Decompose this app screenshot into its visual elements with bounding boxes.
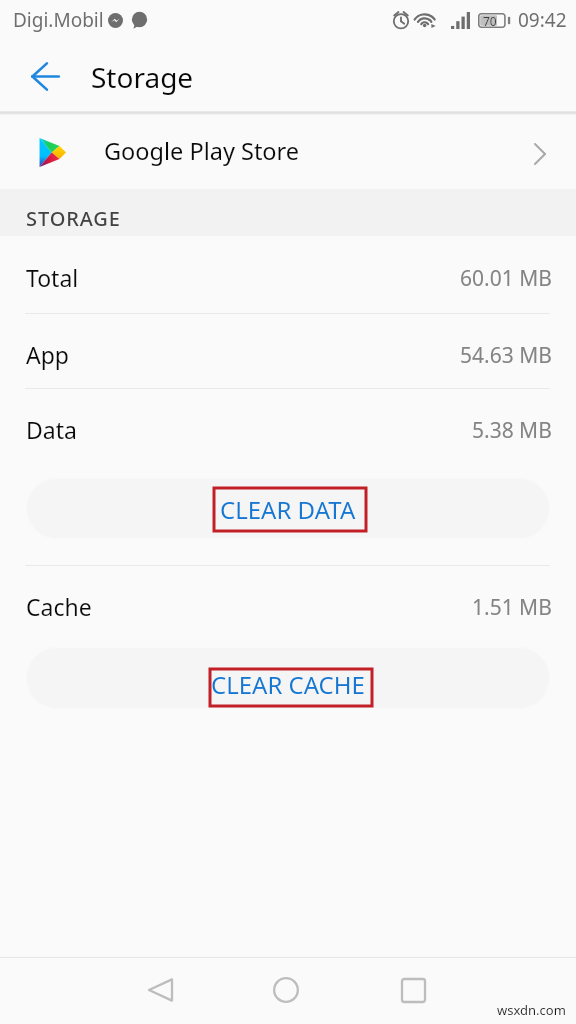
staticText: Storage	[91, 58, 194, 96]
staticText: 09:42	[518, 7, 567, 33]
button[interactable]: Google Play Store	[0, 115, 576, 189]
button[interactable]: Home	[261, 965, 311, 1015]
staticText: CLEAR DATA	[220, 493, 356, 526]
staticText: 60.01 MB	[460, 264, 552, 293]
staticText: App	[26, 339, 69, 370]
staticText: CLEAR CACHE	[211, 668, 365, 701]
button[interactable]: App	[0, 314, 576, 388]
staticText: Total	[26, 262, 79, 293]
button[interactable]: Recents	[388, 965, 438, 1015]
button[interactable]: Back	[135, 965, 185, 1015]
staticText: wsxdn.com	[497, 1001, 566, 1019]
button[interactable]: Cache	[0, 566, 576, 641]
button[interactable]: Back	[20, 51, 70, 101]
staticText: Google Play Store	[104, 135, 300, 167]
staticText: 54.63 MB	[460, 341, 552, 370]
staticText: Data	[26, 414, 77, 445]
button[interactable]: CLEAR DATA	[26, 478, 550, 539]
staticText: 70	[483, 13, 497, 28]
button[interactable]: CLEAR CACHE	[26, 647, 550, 709]
staticText: STORAGE	[26, 205, 121, 232]
button[interactable]: Data	[0, 389, 576, 464]
staticText: 5.38 MB	[472, 416, 552, 445]
staticText: Digi.Mobil	[13, 7, 104, 33]
staticText: 1.51 MB	[472, 593, 552, 622]
staticText: Cache	[26, 591, 92, 622]
button[interactable]: Total	[0, 236, 576, 313]
